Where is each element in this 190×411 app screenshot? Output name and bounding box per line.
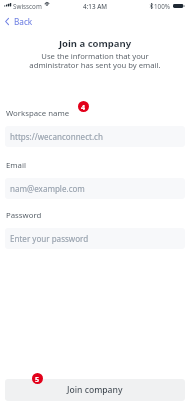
- staticText: nam@example.com: [10, 183, 85, 194]
- staticText: 100%: [154, 2, 171, 11]
- staticText: 4:13 AM: [0, 2, 190, 11]
- staticText: Swisscom: [13, 2, 42, 11]
- button[interactable]: Back: [5, 15, 33, 28]
- staticText: 4: [81, 102, 86, 112]
- staticText: Password: [6, 210, 42, 221]
- staticText: Use the information that your administra…: [0, 51, 190, 70]
- staticText: Join company: [67, 384, 123, 396]
- button[interactable]: Enter your password: [5, 228, 185, 249]
- other: Step 5: [32, 373, 43, 384]
- staticText: Back: [14, 16, 33, 27]
- staticText: Join a company: [0, 37, 190, 50]
- staticText: Email: [6, 160, 27, 171]
- button[interactable]: nam@example.com: [5, 178, 185, 199]
- staticText: 5: [35, 374, 40, 384]
- staticText: Workspace name: [6, 108, 70, 119]
- button[interactable]: https://wecanconnect.ch: [5, 126, 185, 147]
- staticText: Enter your password: [10, 233, 89, 244]
- staticText: https://wecanconnect.ch: [10, 131, 103, 142]
- button[interactable]: Join company: [5, 379, 185, 401]
- other: Step 4: [78, 101, 89, 112]
